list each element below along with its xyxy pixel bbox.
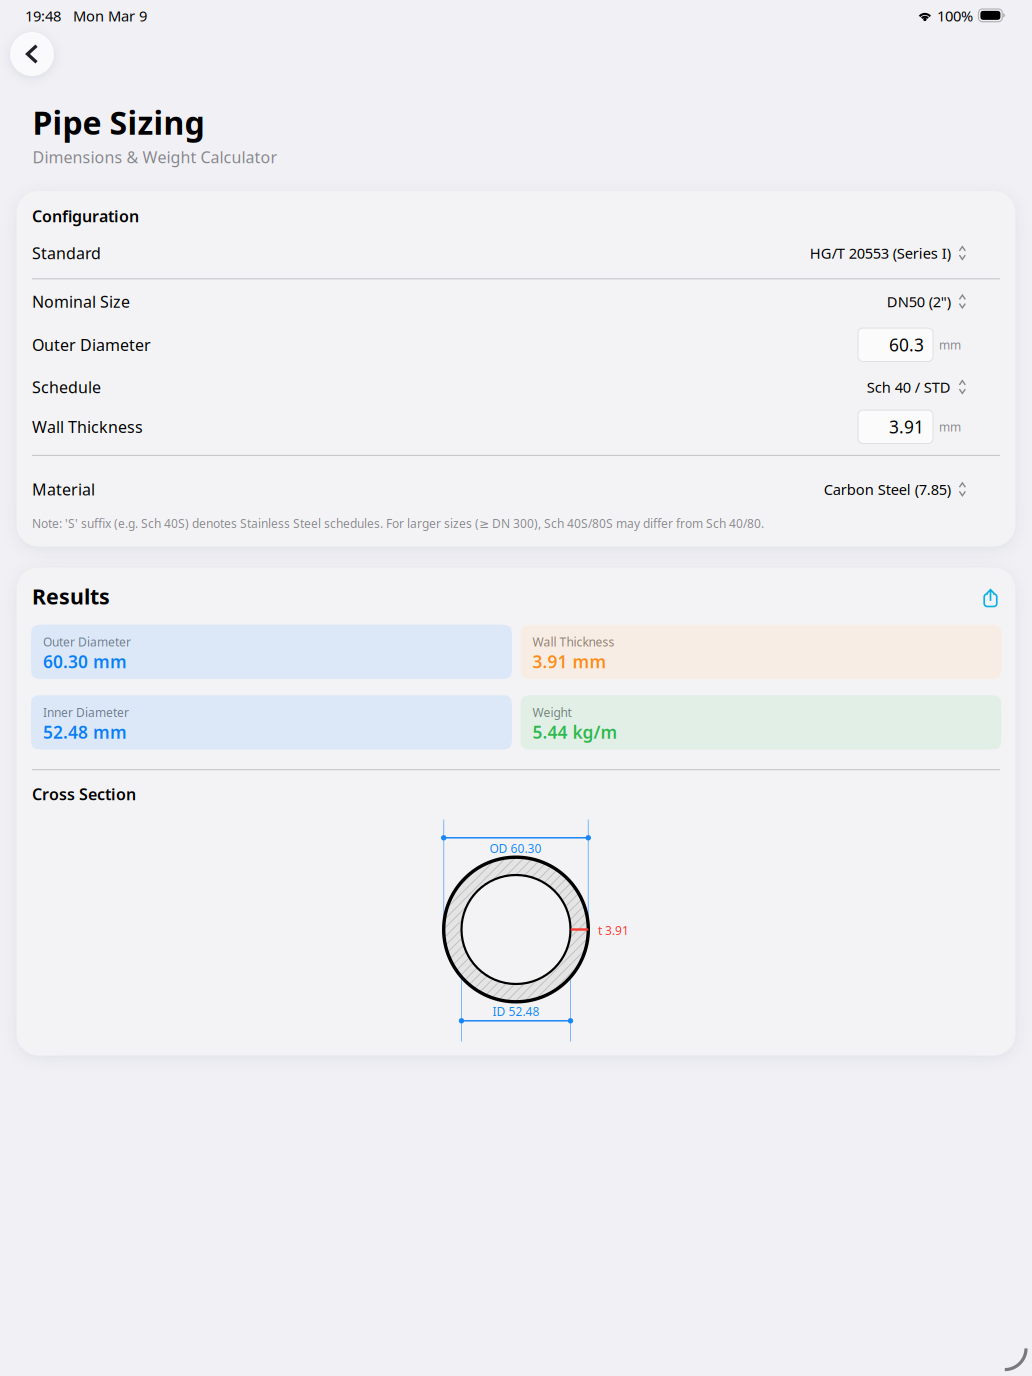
staticText: 3.91 bbox=[889, 415, 924, 438]
staticText: 52.48 mm bbox=[43, 720, 127, 743]
staticText: Mon Mar 9 bbox=[73, 6, 147, 25]
staticText: t 3.91 bbox=[598, 922, 629, 938]
staticText: DN50 (2") bbox=[887, 292, 951, 311]
staticText: Results bbox=[32, 582, 110, 610]
staticText: Outer Diameter bbox=[32, 334, 151, 355]
staticText: HG/T 20553 (Series I) bbox=[810, 243, 951, 263]
button[interactable]: Material bbox=[32, 474, 966, 504]
staticText: ID 52.48 bbox=[492, 1003, 539, 1019]
staticText: OD 60.30 bbox=[489, 840, 541, 856]
button[interactable]: Schedule bbox=[32, 372, 966, 402]
staticText: Pipe Sizing bbox=[32, 101, 204, 143]
staticText: Weight bbox=[532, 704, 571, 720]
button[interactable]: Nominal Size bbox=[32, 286, 966, 316]
button[interactable]: Share bbox=[983, 588, 998, 607]
staticText: Dimensions & Weight Calculator bbox=[32, 146, 277, 168]
staticText: 5.44 kg/m bbox=[532, 720, 617, 743]
staticText: Note: 'S' suffix (e.g. Sch 40S) denotes … bbox=[32, 515, 764, 531]
staticText: 19:48 bbox=[25, 6, 61, 25]
staticText: Inner Diameter bbox=[43, 704, 129, 720]
button[interactable]: Standard bbox=[32, 238, 966, 268]
staticText: Material bbox=[32, 479, 95, 500]
staticText: Schedule bbox=[32, 376, 101, 398]
button[interactable]: 60.3 bbox=[858, 328, 933, 361]
button[interactable]: Back bbox=[10, 32, 54, 76]
staticText: Carbon Steel (7.85) bbox=[824, 480, 951, 499]
staticText: 60.30 mm bbox=[43, 650, 127, 673]
staticText: Configuration bbox=[32, 205, 139, 227]
staticText: Sch 40 / STD bbox=[867, 377, 951, 397]
staticText: 3.91 mm bbox=[532, 650, 606, 673]
staticText: Wall Thickness bbox=[532, 634, 614, 650]
staticText: mm bbox=[939, 419, 961, 435]
staticText: Cross Section bbox=[32, 783, 136, 805]
staticText: Nominal Size bbox=[32, 291, 130, 312]
staticText: mm bbox=[939, 337, 961, 353]
staticText: Standard bbox=[32, 242, 101, 264]
staticText: Outer Diameter bbox=[43, 634, 131, 650]
staticText: 60.3 bbox=[889, 333, 924, 356]
staticText: 100% bbox=[937, 6, 973, 25]
button[interactable]: 3.91 bbox=[858, 410, 933, 443]
staticText: Wall Thickness bbox=[32, 416, 143, 437]
